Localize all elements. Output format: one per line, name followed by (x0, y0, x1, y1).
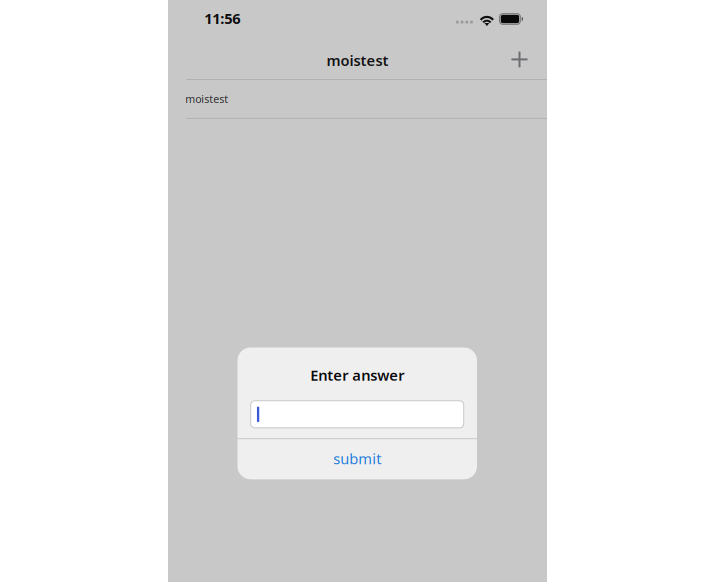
button[interactable]: submit (237, 439, 477, 478)
button[interactable]: Answer text field (251, 401, 464, 428)
staticText: moistest (185, 92, 228, 106)
staticText: 11:56 (204, 8, 240, 28)
button[interactable]: moistest (168, 80, 547, 118)
staticText: submit (333, 449, 381, 468)
staticText: Enter answer (310, 365, 404, 385)
staticText: moistest (326, 51, 388, 70)
button[interactable]: Add (497, 38, 541, 79)
